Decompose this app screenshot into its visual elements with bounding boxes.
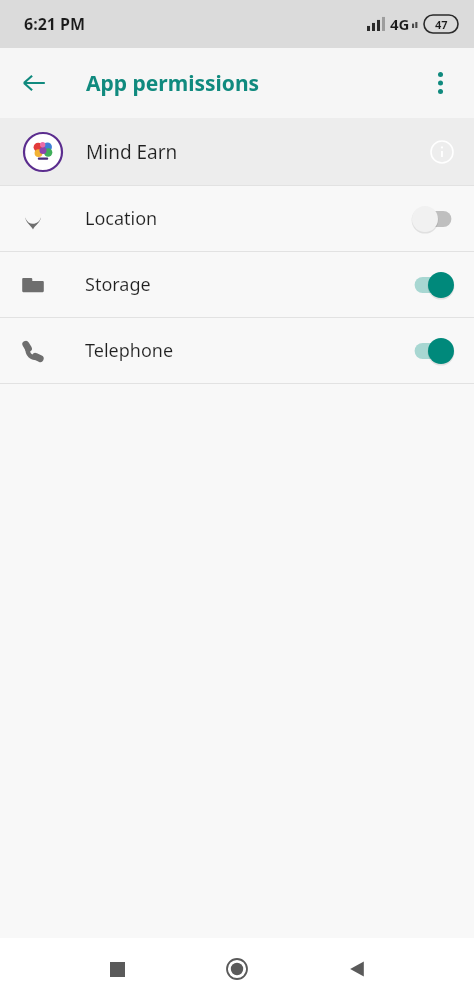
staticText: Storage [85,272,400,297]
button[interactable]: Location permission toggle [400,195,466,243]
button[interactable]: App info [418,128,466,176]
button[interactable]: Back [10,59,58,107]
button[interactable]: Storage [0,252,474,317]
staticText: Mind Earn [86,139,418,165]
button[interactable]: Mind Earn [0,118,474,185]
staticText: Location [85,206,400,231]
staticText: Telephone [85,338,400,363]
staticText: 4G [390,14,410,34]
button[interactable]: Telephone permission toggle [400,327,466,375]
button[interactable]: Telephone [0,318,474,383]
button[interactable]: Location [0,186,474,251]
button[interactable]: Back [333,945,381,993]
staticText: 47 [435,17,448,32]
button[interactable]: More options [418,61,462,105]
button[interactable]: Storage permission toggle [400,261,466,309]
staticText: App permissions [86,69,260,98]
button[interactable]: Recent apps [93,945,141,993]
button[interactable]: Home [213,945,261,993]
staticText: 6:21 PM [24,13,86,35]
